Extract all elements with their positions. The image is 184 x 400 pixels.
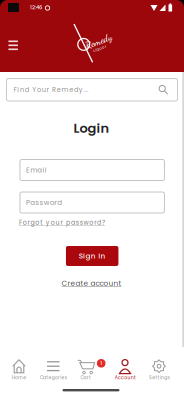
staticText: Password	[26, 198, 62, 207]
staticText: Email	[26, 165, 47, 175]
staticText: Create account	[61, 278, 121, 288]
button[interactable]: Email	[20, 159, 164, 180]
staticText: Account	[115, 375, 136, 381]
button[interactable]: Menu	[8, 40, 18, 50]
staticText: 12:46	[30, 4, 42, 11]
button[interactable]: Search	[6, 78, 177, 101]
staticText: Remedy	[84, 35, 112, 47]
staticText: Categories	[40, 375, 67, 381]
staticText: Liquor	[93, 46, 106, 51]
staticText: Cart	[80, 375, 91, 381]
button[interactable]: Sign in	[66, 246, 118, 266]
button[interactable]: Cart	[0, 0, 184, 400]
staticText: 1	[100, 360, 102, 367]
button[interactable]: Create account	[61, 278, 121, 288]
staticText: Forgot your password?	[19, 218, 105, 227]
staticText: Sign in	[79, 251, 106, 261]
staticText: Home	[12, 375, 26, 381]
button[interactable]: Home	[0, 0, 184, 400]
button[interactable]: Account	[0, 0, 184, 400]
button[interactable]: Settings	[0, 0, 184, 400]
button[interactable]: Password	[20, 192, 164, 213]
button[interactable]: Categories	[0, 0, 184, 400]
staticText: Login	[73, 119, 109, 137]
staticText: Settings	[149, 375, 169, 381]
button[interactable]: Forgot your password?	[19, 218, 105, 227]
staticText: Find Your Remedy...	[13, 85, 88, 94]
